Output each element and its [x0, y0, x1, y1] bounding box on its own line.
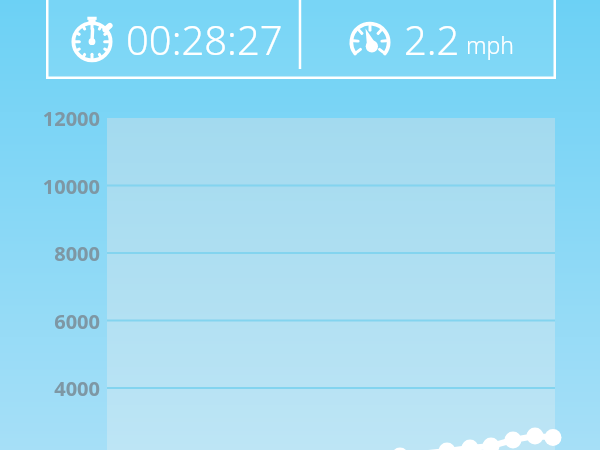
- staticText: 00:28:27: [126, 12, 283, 66]
- staticText: 10000: [0, 173, 100, 200]
- staticText: 6000: [0, 308, 100, 335]
- staticText: 12000: [0, 105, 100, 132]
- other: Current speed: [343, 12, 397, 66]
- staticText: 8000: [0, 240, 100, 267]
- staticText: mph: [466, 29, 515, 60]
- button[interactable]: Current speed: [301, 0, 556, 86]
- button[interactable]: Elapsed time: [46, 0, 301, 86]
- staticText: 2.2: [404, 12, 460, 66]
- staticText: 4000: [0, 375, 100, 402]
- other: Elapsed time: [65, 12, 119, 66]
